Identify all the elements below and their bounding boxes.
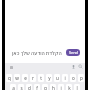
button[interactable]: f (34, 84, 40, 90)
button[interactable]: d (26, 84, 32, 90)
staticText: Send (69, 50, 78, 55)
button[interactable]: j (58, 84, 64, 90)
button[interactable]: l (74, 84, 80, 90)
button[interactable]: a (10, 84, 16, 90)
button[interactable]: Voice input (71, 64, 76, 69)
button[interactable]: Search (78, 64, 83, 69)
staticText: d (28, 85, 31, 90)
button[interactable]: Send (66, 49, 80, 56)
staticText: s (20, 85, 23, 90)
staticText: l (76, 85, 78, 90)
staticText: r (32, 75, 34, 81)
button[interactable]: u (54, 74, 60, 82)
button[interactable]: w (14, 74, 20, 82)
staticText: f (36, 85, 38, 90)
staticText: g (44, 85, 47, 90)
staticText: q (8, 75, 11, 81)
staticText: הקלדת הודעה שלך כאן (12, 50, 62, 57)
staticText: t (40, 75, 42, 81)
button[interactable]: k (66, 84, 72, 90)
staticText: a (12, 85, 15, 90)
staticText: y (48, 75, 51, 81)
staticText: p (80, 75, 83, 81)
staticText: u (56, 75, 59, 81)
staticText: j (60, 85, 62, 90)
button[interactable]: o (70, 74, 76, 82)
button[interactable]: q (6, 74, 12, 82)
button[interactable]: t (38, 74, 44, 82)
staticText: k (68, 85, 71, 90)
button[interactable]: g (42, 84, 48, 90)
staticText: h (52, 85, 55, 90)
button[interactable]: y (46, 74, 52, 82)
button[interactable]: h (50, 84, 56, 90)
staticText: e (24, 75, 27, 81)
staticText: w (15, 75, 19, 81)
button[interactable]: e (22, 74, 28, 82)
button[interactable]: s (18, 84, 24, 90)
button[interactable]: i (62, 74, 68, 82)
staticText: o (72, 75, 75, 81)
button[interactable]: p (78, 74, 84, 82)
button[interactable]: r (30, 74, 36, 82)
staticText: i (64, 75, 66, 81)
